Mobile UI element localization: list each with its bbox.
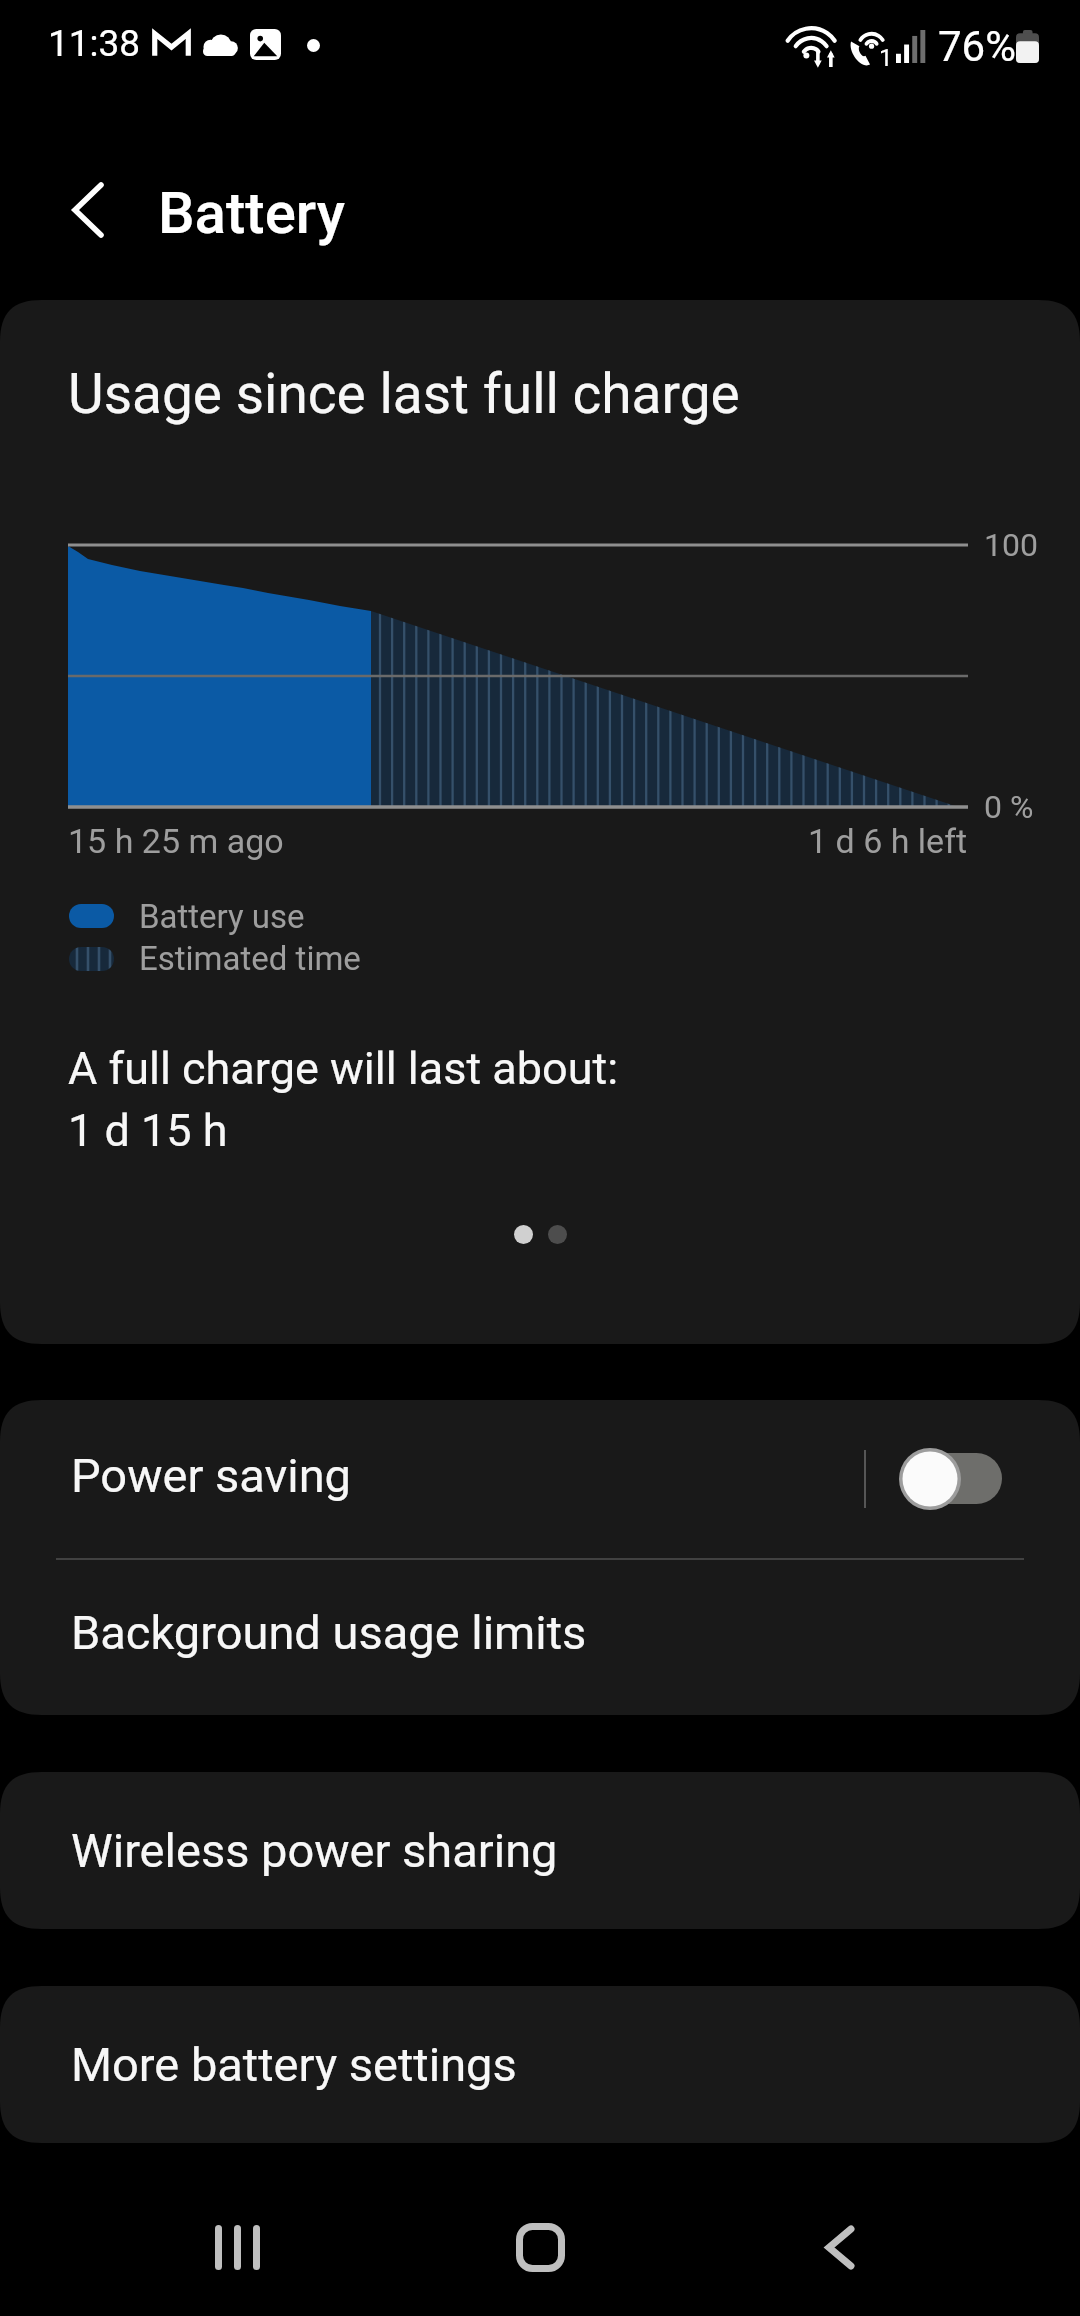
button[interactable]: Power saving toggle, off [903,1453,1002,1504]
staticText: 1 d 6 h left [808,821,968,861]
button[interactable]: Background usage limits [0,1558,1080,1715]
button[interactable]: Back [790,2196,910,2316]
staticText: More battery settings [71,2037,517,2092]
staticText: Wireless power sharing [71,1823,558,1878]
staticText: Usage since last full charge [68,362,740,426]
staticText: 15 h 25 m ago [68,821,284,861]
staticText: Estimated time [139,939,361,978]
staticText: 11:38 [48,22,141,65]
staticText: 100 [984,526,1038,564]
staticText: Background usage limits [71,1605,587,1660]
button[interactable]: More battery settings [0,1986,1080,2143]
staticText: 76% [938,22,1016,71]
button[interactable]: Navigate up [22,150,138,280]
button[interactable]: Wireless power sharing [0,1772,1080,1929]
staticText: Battery [158,179,345,247]
staticText: A full charge will last about: [68,1042,619,1095]
staticText: 1 [879,44,893,72]
staticText: Battery use [139,897,305,936]
staticText: 1 d 15 h [68,1104,228,1157]
button[interactable]: Power saving [0,1400,1080,1558]
button[interactable]: Home [480,2196,600,2316]
staticText: 0 % [984,788,1034,826]
staticText: Power saving [71,1448,352,1503]
button[interactable]: Recent apps [178,2196,298,2316]
